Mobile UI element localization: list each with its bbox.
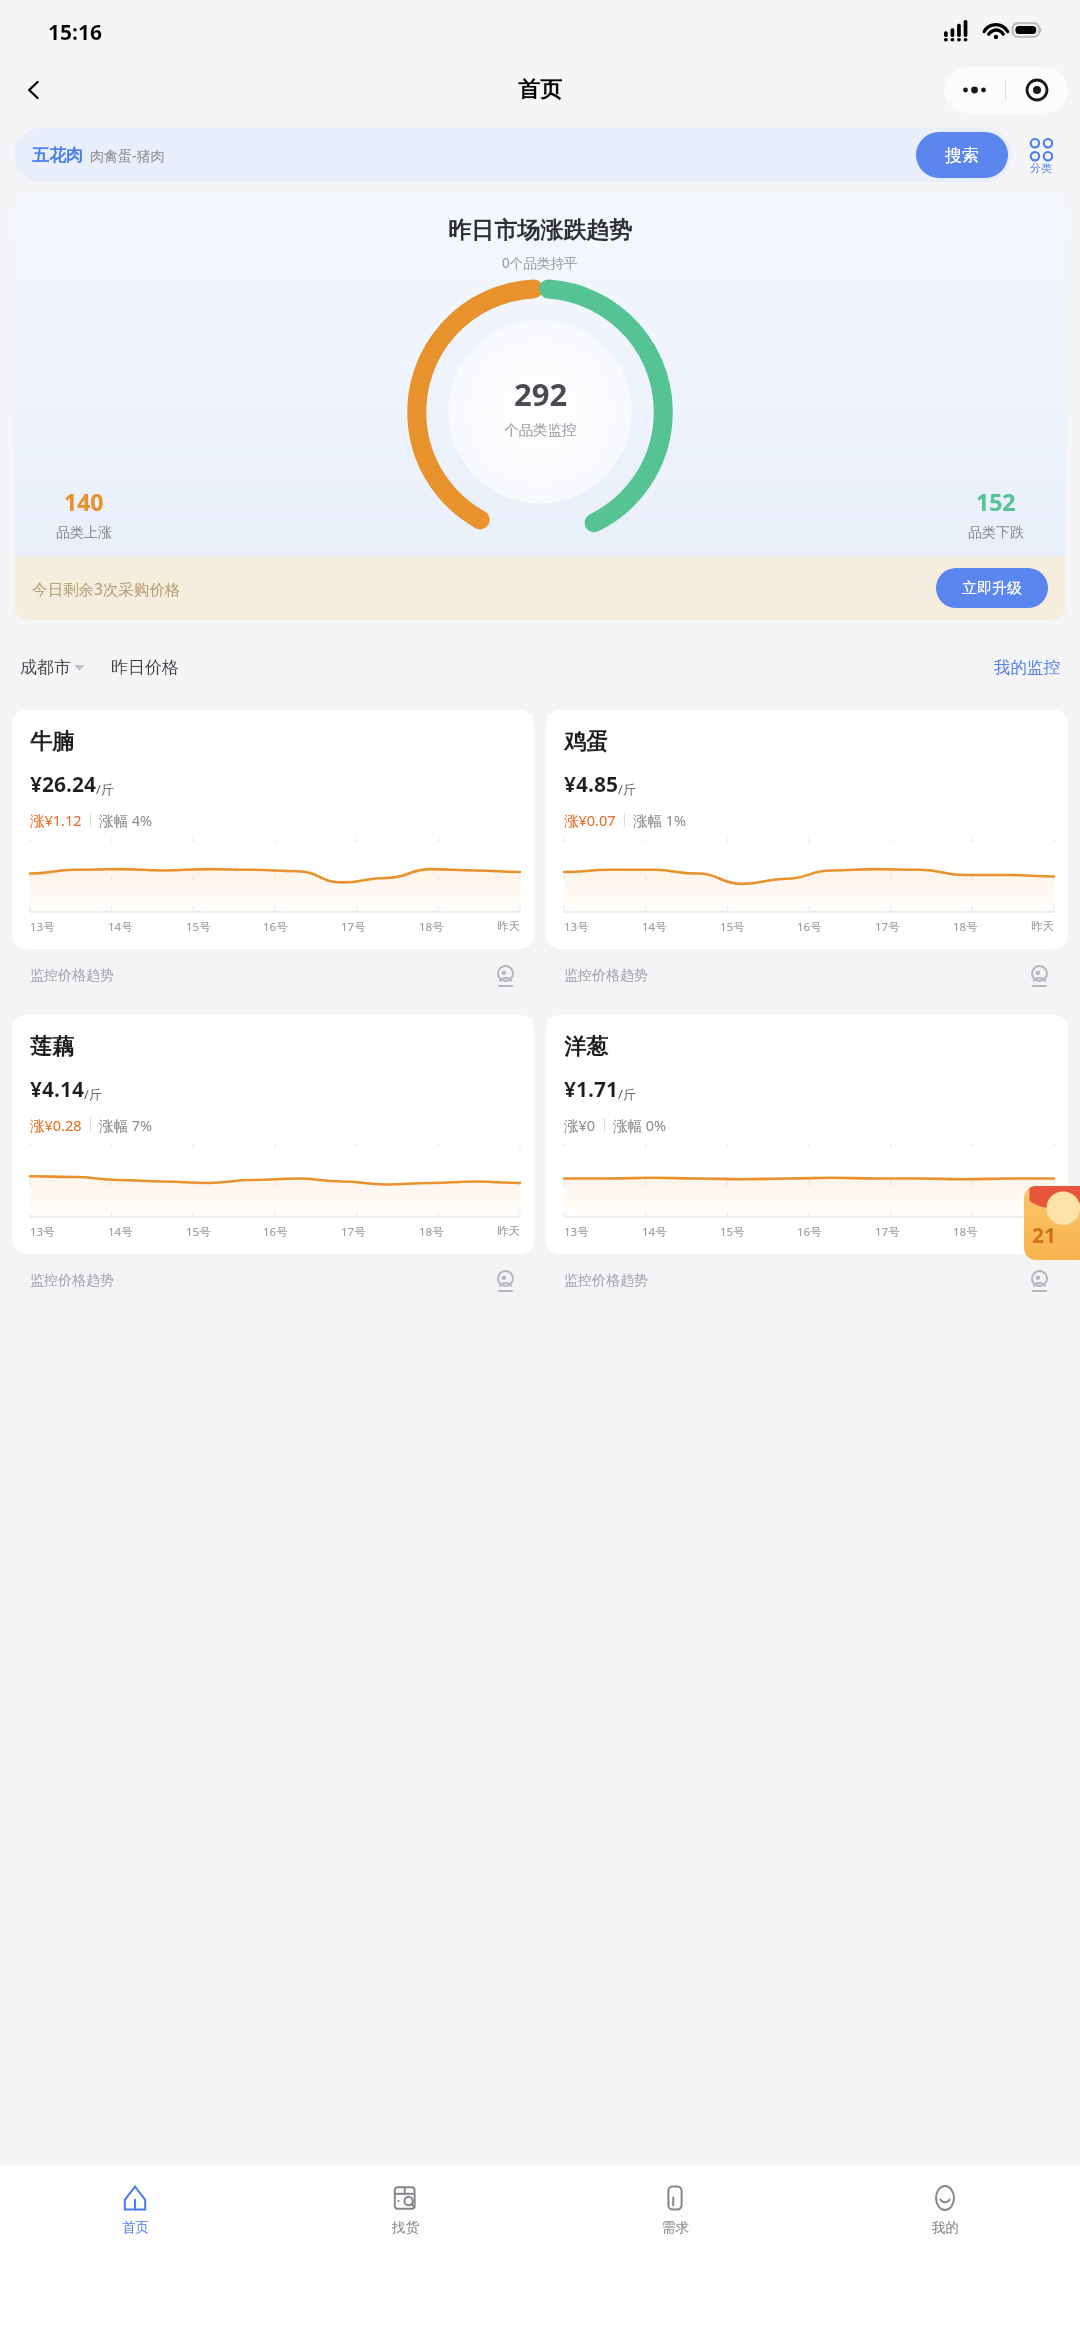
staticText: 立即升级 [962,579,1022,598]
staticText: 13号 [30,919,55,935]
button[interactable]: 昨日市场涨跌趋势 [14,194,1066,566]
staticText: 15:16 [48,18,102,47]
button[interactable]: 分类 [1012,136,1070,175]
staticText: 肉禽蛋-猪肉 [90,146,165,165]
button[interactable]: 五花肉 [14,128,1012,182]
staticText: 昨日市场涨跌趋势 [448,216,632,245]
staticText: 找货 [392,2219,419,2236]
button[interactable]: 搜索 [916,132,1008,178]
button[interactable]: 鸡蛋 [546,710,1068,1003]
button[interactable]: 找货 [270,2177,540,2341]
button[interactable]: 需求 [540,2177,810,2341]
staticText: 15号 [720,1224,745,1240]
staticText: 昨天 [497,919,520,933]
staticText: 17号 [341,919,366,935]
button[interactable]: 成都市 [20,657,85,678]
staticText: /斤 [96,780,114,798]
staticText: 21 [1032,1221,1057,1250]
staticText: 涨¥0 [564,1115,596,1135]
button[interactable]: Back [12,68,56,112]
staticText: 14号 [642,1224,667,1240]
staticText: 13号 [564,1224,589,1240]
staticText: 0个品类持平 [502,254,578,272]
staticText: 涨幅 0% [613,1115,667,1135]
button[interactable]: 莲藕 [12,1015,534,1308]
staticText: 18号 [419,919,444,935]
staticText: 16号 [263,1224,288,1240]
staticText: /斤 [618,780,636,798]
staticText: 今日剩余3次采购价格 [32,578,181,599]
staticText: 昨天 [497,1224,520,1238]
staticText: 17号 [341,1224,366,1240]
staticText: 17号 [875,919,900,935]
staticText: 18号 [953,919,978,935]
staticText: 15号 [186,1224,211,1240]
button[interactable]: 牛腩 [12,710,534,1003]
staticText: 18号 [419,1224,444,1240]
staticText: 牛腩 [30,728,74,756]
staticText: 涨¥0.28 [30,1115,82,1135]
staticText: 14号 [642,919,667,935]
staticText: 我的 [932,2219,959,2236]
staticText: 16号 [797,1224,822,1240]
staticText: 洋葱 [564,1033,608,1061]
staticText: 15号 [186,919,211,935]
staticText: 监控价格趋势 [564,1272,648,1290]
staticText: /斤 [618,1085,636,1103]
staticText: 292 [514,373,568,415]
staticText: 涨幅 7% [99,1115,153,1135]
staticText: 首页 [122,2219,149,2236]
staticText: 16号 [797,919,822,935]
other: Monitor [493,1269,518,1294]
button[interactable]: 昨日价格 [111,657,179,678]
staticText: 监控价格趋势 [564,967,648,985]
staticText: ¥4.85 [564,770,618,799]
staticText: ¥1.71 [564,1075,618,1104]
staticText: 14号 [108,1224,133,1240]
other: Monitor [1027,1269,1052,1294]
button[interactable]: 立即升级 [936,568,1048,608]
button[interactable]: Menu [944,67,1068,113]
staticText: 涨幅 1% [633,810,687,830]
other: Monitor [493,964,518,989]
staticText: 17号 [875,1224,900,1240]
staticText: 13号 [564,919,589,935]
staticText: 搜索 [945,145,979,166]
staticText: 16号 [263,919,288,935]
staticText: 首页 [518,76,562,104]
button[interactable]: 首页 [0,2177,270,2341]
button[interactable]: Rewards [1024,1186,1080,1260]
button[interactable]: 洋葱 [546,1015,1068,1308]
staticText: 涨¥0.07 [564,810,616,830]
staticText: 140 [64,486,104,517]
staticText: ¥4.14 [30,1075,84,1104]
staticText: 152 [976,486,1016,517]
staticText: 监控价格趋势 [30,967,114,985]
staticText: 昨天 [1031,1224,1054,1238]
staticText: 15号 [720,919,745,935]
staticText: 14号 [108,919,133,935]
staticText: 分类 [1030,161,1052,175]
staticText: 18号 [953,1224,978,1240]
staticText: 涨幅 4% [99,810,153,830]
staticText: 五花肉 [32,145,83,166]
staticText: 需求 [662,2219,689,2236]
staticText: 成都市 [20,657,71,678]
staticText: 品类上涨 [56,524,112,542]
staticText: 涨¥1.12 [30,810,82,830]
staticText: 个品类监控 [504,421,577,439]
staticText: /斤 [84,1085,102,1103]
staticText: 监控价格趋势 [30,1272,114,1290]
staticText: ¥26.24 [30,770,96,799]
other: Monitor [1027,964,1052,989]
staticText: 13号 [30,1224,55,1240]
staticText: 昨天 [1031,919,1054,933]
staticText: 鸡蛋 [564,728,608,756]
staticText: 品类下跌 [968,524,1024,542]
button[interactable]: 我的监控 [994,657,1060,678]
button[interactable]: 我的 [810,2177,1080,2341]
staticText: 莲藕 [30,1033,74,1061]
